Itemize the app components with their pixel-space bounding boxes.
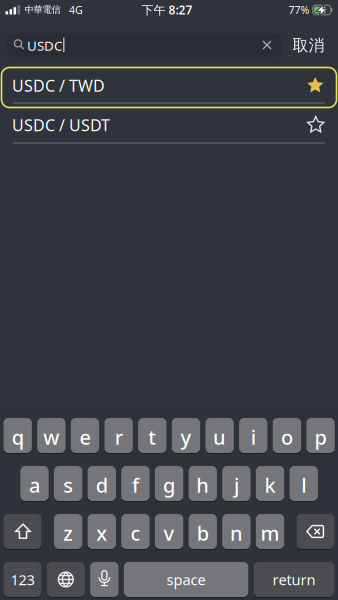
button[interactable]: 123 [3,562,41,597]
staticText: c [130,520,140,546]
staticText: y [180,424,191,450]
button[interactable]: h [189,466,217,501]
staticText: l [301,472,306,498]
staticText: USDC / TWD [12,75,105,96]
staticText: s [63,472,73,498]
button[interactable]: p [306,418,335,453]
staticText: p [314,424,326,450]
button[interactable]: c [121,514,150,549]
staticText: j [234,472,239,498]
staticText: d [96,472,108,498]
staticText: a [29,472,40,498]
button[interactable]: q [3,418,32,453]
staticText: i [251,424,256,450]
staticText: u [213,424,226,450]
button[interactable]: l [289,466,318,501]
staticText: w [43,424,59,450]
staticText: o [281,424,293,450]
button[interactable]: Dictation [90,562,119,597]
staticText: r [115,424,123,450]
staticText: 77% [288,3,309,17]
button[interactable]: Shift [3,514,41,549]
button[interactable]: y [172,418,200,453]
staticText: return [273,570,316,589]
button[interactable]: n [222,514,251,549]
staticText: e [79,424,90,450]
button[interactable]: b [189,514,217,549]
staticText: 下午 8:27 [141,2,192,18]
button[interactable]: o [273,418,301,453]
button[interactable]: f [121,466,150,501]
staticText: v [164,520,175,546]
button[interactable]: d [88,466,116,501]
button[interactable]: v [155,514,183,549]
staticText: x [96,520,107,546]
staticText: q [12,424,24,450]
button[interactable]: space [124,562,248,597]
staticText: f [132,472,139,498]
staticText: h [196,472,209,498]
staticText: b [197,520,209,546]
button[interactable]: e [71,418,99,453]
button[interactable]: Delete [296,514,334,549]
button[interactable]: s [54,466,82,501]
button[interactable]: i [239,418,267,453]
staticText: 中華電信 [24,4,60,15]
button[interactable]: return [254,562,335,597]
button[interactable]: Next keyboard [47,562,85,597]
staticText: k [265,472,276,498]
staticText: z [63,520,73,546]
button[interactable]: a [20,466,49,501]
button[interactable]: r [104,418,133,453]
staticText: t [148,424,156,450]
staticText: 4G [69,3,83,17]
button[interactable]: 取消 [292,35,324,55]
button[interactable]: z [54,514,82,549]
button[interactable]: Search [7,33,281,57]
button[interactable]: Clear text [253,31,281,59]
button[interactable]: g [155,466,183,501]
staticText: 123 [10,570,34,589]
staticText: USDC [27,37,62,54]
staticText: g [163,472,175,498]
button[interactable]: j [222,466,251,501]
staticText: USDC / USDT [12,114,110,136]
staticText: n [230,520,243,546]
staticText: space [167,570,206,589]
button[interactable]: x [88,514,116,549]
button[interactable]: USDC / TWD [1,67,336,107]
button[interactable]: USDC / USDT [0,107,338,142]
button[interactable]: t [138,418,166,453]
staticText: 取消 [292,35,324,55]
button[interactable]: k [256,466,284,501]
staticText: m [260,520,279,546]
button[interactable]: u [205,418,234,453]
button[interactable]: w [37,418,65,453]
button[interactable]: m [256,514,284,549]
